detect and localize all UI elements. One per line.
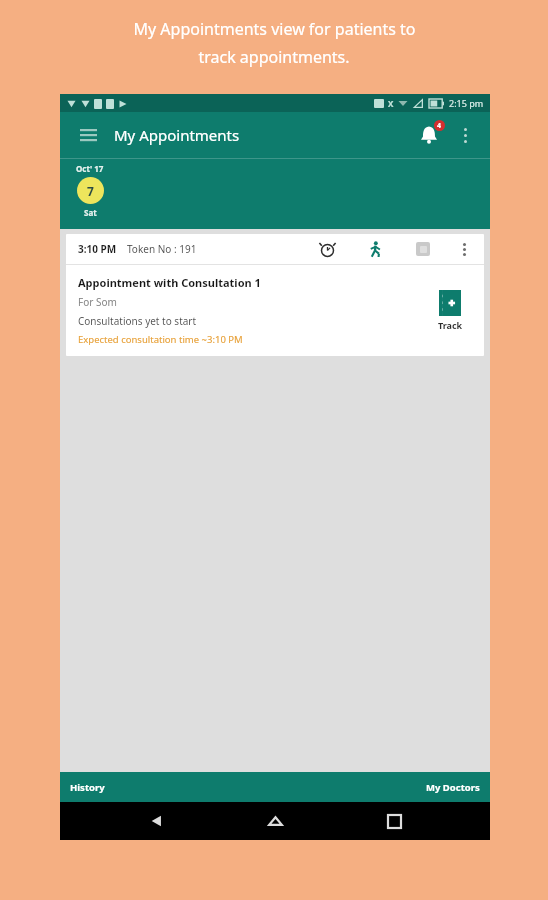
button[interactable]: Video consultation, unavailable — [408, 234, 438, 264]
staticText: My Doctors — [426, 781, 480, 794]
staticText: 7 — [87, 183, 94, 199]
staticText: 2:15 pm — [449, 97, 484, 109]
staticText: History — [70, 781, 105, 794]
staticText: For Som — [78, 295, 117, 309]
staticText: 4 — [437, 121, 442, 131]
staticText: track appointments. — [198, 46, 350, 68]
button[interactable]: History — [60, 772, 115, 802]
staticText: Oct' 17 — [76, 163, 104, 174]
staticText: Expected consultation time ~3:10 PM — [78, 333, 243, 346]
staticText: Appointment with Consultation 1 — [78, 275, 261, 290]
staticText: My Appointments view for patients to — [133, 18, 416, 40]
button[interactable]: Oct' 17 — [68, 163, 112, 218]
staticText: X — [388, 98, 394, 109]
button[interactable]: Back — [135, 802, 179, 840]
button[interactable]: More options — [448, 118, 482, 152]
staticText: 3:10 PM — [78, 242, 117, 256]
staticText: Token No : 191 — [127, 242, 197, 256]
button[interactable]: 3:10 PM — [66, 234, 484, 356]
staticText: Sat — [84, 207, 97, 218]
button[interactable]: Track — [426, 290, 474, 331]
staticText: My Appointments — [114, 125, 240, 145]
button[interactable]: Recent apps — [372, 802, 416, 840]
button[interactable]: Open navigation menu — [72, 119, 104, 151]
staticText: Track — [438, 319, 463, 331]
button[interactable]: Directions — [360, 234, 390, 264]
button[interactable]: Home — [253, 802, 297, 840]
button[interactable]: Notifications — [410, 116, 448, 154]
staticText: Consultations yet to start — [78, 314, 197, 328]
button[interactable]: Appointment options — [450, 235, 478, 263]
button[interactable]: My Doctors — [416, 772, 490, 802]
button[interactable]: Set reminder — [312, 234, 342, 264]
